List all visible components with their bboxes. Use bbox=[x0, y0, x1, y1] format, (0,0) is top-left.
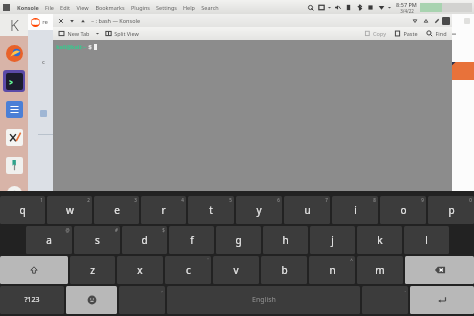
staticText: x bbox=[137, 263, 143, 277]
button[interactable]: k bbox=[357, 226, 402, 254]
button[interactable]: Scroll up bbox=[420, 15, 431, 26]
staticText: ' bbox=[207, 257, 209, 263]
staticText: 7 bbox=[325, 197, 328, 203]
button[interactable]: Konsole bbox=[14, 4, 42, 11]
button[interactable]: Settings bbox=[153, 4, 180, 11]
button[interactable]: Copy bbox=[362, 30, 388, 37]
button[interactable]: b bbox=[261, 256, 307, 284]
button[interactable]: a bbox=[26, 226, 72, 254]
button[interactable]: Scroll down bbox=[409, 15, 420, 26]
button[interactable]: Bluetooth devices bbox=[305, 2, 316, 13]
staticText: c bbox=[186, 263, 191, 277]
button[interactable]: u bbox=[284, 196, 330, 224]
button[interactable]: Konsole terminal bbox=[5, 72, 23, 90]
button[interactable]: d bbox=[122, 226, 167, 254]
staticText: 8:57 PM bbox=[396, 1, 417, 8]
button[interactable]: Up bbox=[77, 15, 88, 26]
button[interactable]: g bbox=[216, 226, 261, 254]
button[interactable]: System settings bbox=[3, 182, 25, 204]
staticText: , bbox=[161, 287, 163, 293]
staticText: c bbox=[42, 58, 45, 66]
staticText: Copy bbox=[373, 30, 386, 37]
button[interactable]: Emoji bbox=[66, 286, 117, 314]
button[interactable]: Shift bbox=[0, 256, 68, 284]
staticText: n bbox=[329, 263, 336, 277]
staticText: Find bbox=[435, 30, 447, 37]
staticText: 8 bbox=[373, 197, 376, 203]
button[interactable]: Down bbox=[66, 15, 77, 26]
staticText: 3/4/22 bbox=[400, 8, 414, 14]
staticText: h bbox=[282, 233, 289, 247]
button[interactable]: English bbox=[167, 286, 360, 314]
button[interactable]: Clipboard bbox=[365, 2, 376, 13]
button[interactable]: New Tab bbox=[56, 30, 92, 37]
button[interactable]: Volume bbox=[332, 2, 343, 13]
button[interactable]: r bbox=[141, 196, 186, 224]
button[interactable]: Battery bbox=[343, 2, 354, 13]
staticText: g bbox=[235, 233, 242, 247]
staticText: $ bbox=[88, 43, 92, 50]
button[interactable]: s bbox=[74, 226, 120, 254]
button[interactable]: Plugins bbox=[128, 4, 153, 11]
button[interactable]: Firefox bbox=[3, 42, 25, 64]
button[interactable]: m bbox=[357, 256, 403, 284]
button[interactable]: Split View bbox=[103, 30, 141, 37]
button[interactable]: Edit bbox=[57, 4, 73, 11]
button[interactable]: View bbox=[73, 4, 92, 11]
button[interactable]: Enter bbox=[410, 286, 474, 314]
button[interactable]: Search bbox=[198, 4, 222, 11]
staticText: l bbox=[425, 233, 428, 247]
button[interactable]: Text editor bbox=[3, 98, 25, 120]
button[interactable]: Bluetooth bbox=[354, 2, 365, 13]
button[interactable]: File bbox=[42, 4, 57, 11]
button[interactable]: w bbox=[47, 196, 92, 224]
staticText: f bbox=[190, 233, 194, 247]
button[interactable]: t bbox=[188, 196, 234, 224]
button[interactable]: Display bbox=[316, 2, 327, 13]
button[interactable]: Dictionary bbox=[3, 154, 25, 176]
staticText: 5 bbox=[229, 197, 232, 203]
button[interactable]: Paste bbox=[392, 30, 420, 37]
button[interactable]: q bbox=[0, 196, 45, 224]
staticText: j bbox=[331, 233, 334, 247]
button[interactable]: Network bbox=[376, 2, 387, 13]
button[interactable]: h bbox=[263, 226, 308, 254]
button[interactable]: o bbox=[380, 196, 426, 224]
button[interactable]: Spreadsheet bbox=[3, 126, 25, 148]
button[interactable]: Backspace bbox=[405, 256, 474, 284]
button[interactable]: Help bbox=[180, 4, 198, 11]
button[interactable]: ?123 bbox=[0, 286, 64, 314]
staticText: 4 bbox=[181, 197, 184, 203]
button[interactable]: p bbox=[428, 196, 474, 224]
button[interactable]: Window menu bbox=[442, 17, 450, 25]
button[interactable]: c bbox=[165, 256, 211, 284]
button[interactable]: l bbox=[404, 226, 449, 254]
button[interactable]: z bbox=[70, 256, 115, 284]
button[interactable]: j bbox=[310, 226, 355, 254]
staticText: New Tab bbox=[67, 30, 90, 37]
staticText: View bbox=[76, 4, 89, 11]
staticText: @ bbox=[65, 227, 70, 233]
button[interactable]: Edit bbox=[431, 15, 442, 26]
button[interactable]: Close tab bbox=[55, 15, 66, 26]
button[interactable]: n bbox=[309, 256, 355, 284]
button[interactable]: x bbox=[117, 256, 163, 284]
button[interactable]: File manager bbox=[3, 210, 25, 232]
staticText: English bbox=[252, 295, 276, 305]
staticText: y bbox=[256, 203, 262, 217]
staticText: $ bbox=[162, 227, 165, 233]
staticText: v bbox=[233, 263, 239, 277]
button[interactable]: e bbox=[94, 196, 139, 224]
button[interactable]: v bbox=[213, 256, 259, 284]
button[interactable]: y bbox=[236, 196, 282, 224]
staticText: # bbox=[115, 227, 118, 233]
button[interactable]: i bbox=[332, 196, 378, 224]
button[interactable]: Bookmarks bbox=[92, 4, 128, 11]
button[interactable]: Writer bbox=[3, 238, 25, 260]
button[interactable]: Find bbox=[424, 30, 449, 37]
button[interactable]: f bbox=[169, 226, 214, 254]
